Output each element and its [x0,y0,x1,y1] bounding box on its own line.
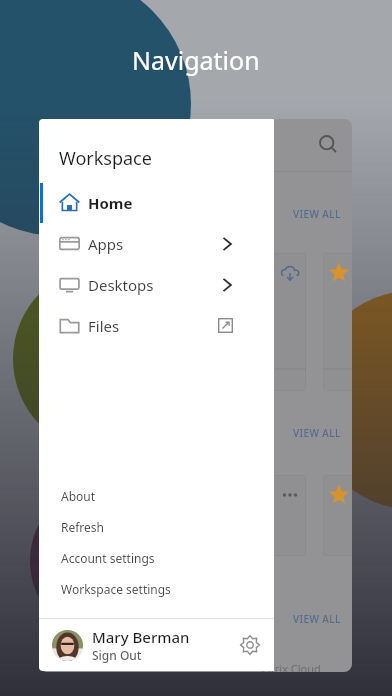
button[interactable]: Files [39,305,274,346]
button[interactable] [218,475,306,556]
staticText: Sign Out [92,647,142,663]
staticText: VIEW ALL [293,612,341,626]
button[interactable] [113,253,201,391]
staticText: Workspace [59,146,152,171]
button[interactable]: Apps [39,223,274,264]
button[interactable]: Refresh [39,511,274,542]
button[interactable] [323,475,352,556]
button[interactable]: VIEW ALL [293,612,341,626]
staticText: VIEW ALL [293,426,341,440]
button[interactable]: Desktops [39,264,274,305]
button[interactable]: Mary Berman [39,619,274,671]
button[interactable]: Account settings [39,542,274,573]
staticText: Apps [88,234,124,254]
staticText: Navigation [132,43,260,77]
button[interactable] [323,253,352,391]
staticText: Account settings [61,550,155,566]
staticText: Files [88,316,120,336]
button[interactable]: Settings [240,635,260,655]
staticText: VIEW ALL [293,207,341,221]
staticText: Home [88,193,133,213]
button[interactable]: Search [315,131,339,155]
button[interactable] [218,253,306,391]
button[interactable]: Workspace settings [39,573,274,604]
staticText: Mary Berman [92,627,190,647]
staticText: About [61,488,96,504]
staticText: Desktops [88,275,154,295]
staticText: Citrix Cloud [261,661,321,672]
button[interactable]: Home [39,182,274,223]
button[interactable]: About [39,480,274,511]
staticText: Workspace settings [61,581,171,597]
button[interactable]: VIEW ALL [293,426,341,440]
staticText: Refresh [61,519,105,535]
button[interactable]: VIEW ALL [293,207,341,221]
